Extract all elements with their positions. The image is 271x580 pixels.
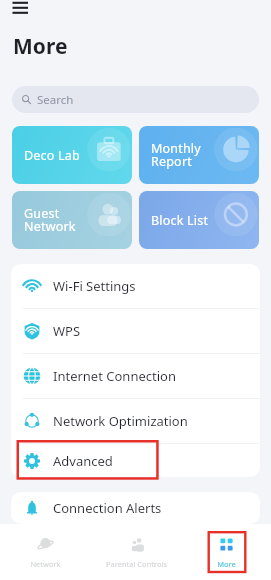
staticText: Guest Network bbox=[24, 205, 76, 235]
button[interactable]: Parental Controls bbox=[91, 524, 181, 580]
button[interactable]: Block List bbox=[139, 191, 259, 249]
button[interactable]: WPS bbox=[11, 309, 260, 353]
staticText: Advanced bbox=[53, 452, 113, 470]
button[interactable]: Advanced bbox=[11, 444, 260, 477]
staticText: Connection Alerts bbox=[53, 499, 162, 517]
staticText: Network bbox=[30, 559, 61, 569]
staticText: Search bbox=[37, 92, 74, 108]
staticText: Network Optimization bbox=[53, 412, 188, 430]
staticText: WPS bbox=[53, 322, 81, 340]
button[interactable]: Menu bbox=[8, 0, 32, 18]
button[interactable]: Connection Alerts bbox=[11, 492, 260, 524]
button[interactable]: Wi-Fi Settings bbox=[11, 264, 260, 308]
button[interactable]: Search bbox=[12, 86, 259, 113]
staticText: More bbox=[13, 32, 68, 61]
staticText: Parental Controls bbox=[106, 559, 167, 569]
button[interactable]: Guest Network bbox=[12, 191, 132, 249]
button[interactable]: More bbox=[181, 524, 271, 580]
staticText: Monthly Report bbox=[151, 140, 201, 170]
button[interactable]: Internet Connection bbox=[11, 354, 260, 398]
button[interactable]: Network bbox=[0, 524, 91, 580]
staticText: Wi-Fi Settings bbox=[53, 277, 136, 295]
button[interactable]: Monthly Report bbox=[139, 126, 259, 184]
staticText: Internet Connection bbox=[53, 367, 176, 385]
staticText: More bbox=[217, 559, 236, 569]
button[interactable]: Deco Lab bbox=[12, 126, 132, 184]
button[interactable]: Network Optimization bbox=[11, 399, 260, 443]
staticText: Block List bbox=[151, 212, 209, 229]
staticText: Deco Lab bbox=[24, 147, 80, 164]
